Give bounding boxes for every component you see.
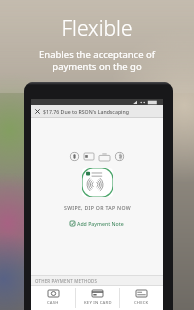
button[interactable]: Chip card xyxy=(84,153,94,160)
button[interactable]: KEY IN CARD xyxy=(76,286,119,310)
staticText: SWIPE, DIP OR TAP NOW xyxy=(64,204,131,211)
button[interactable]: Add Payment Note xyxy=(68,218,126,229)
button[interactable]: CASH xyxy=(31,286,75,310)
button[interactable]: Card reader xyxy=(82,168,113,197)
staticText: CASH xyxy=(47,300,59,306)
staticText: $17.76 Due to RSON's Landscaping xyxy=(43,108,129,115)
staticText: CHECK xyxy=(134,300,149,306)
button[interactable]: Close xyxy=(31,105,43,117)
button[interactable]: CHECK xyxy=(120,286,163,310)
button[interactable]: Tap to pay xyxy=(70,152,79,161)
staticText: Flexible xyxy=(61,14,133,43)
staticText: Add Payment Note xyxy=(77,220,124,227)
button[interactable]: Contactless xyxy=(115,152,124,161)
staticText: Enables the acceptance of payments on th… xyxy=(39,48,155,73)
staticText: KEY IN CARD xyxy=(84,300,112,306)
button[interactable]: Swipe card xyxy=(99,153,110,161)
staticText: OTHER PAYMENT METHODS xyxy=(35,278,98,284)
